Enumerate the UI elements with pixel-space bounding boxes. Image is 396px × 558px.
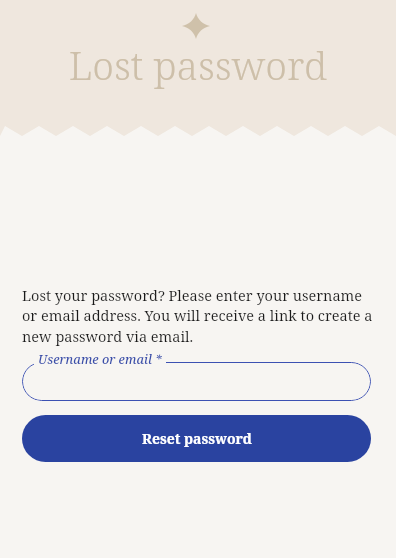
staticText: Lost your password? Please enter your us…	[22, 285, 374, 347]
staticText: Lost password	[0, 38, 396, 91]
staticText: Reset password	[142, 429, 252, 448]
staticText: Username or email *	[38, 351, 162, 366]
other: Decorative sparkle	[182, 13, 210, 39]
button[interactable]: Reset password	[22, 415, 371, 462]
button[interactable]	[22, 362, 371, 401]
